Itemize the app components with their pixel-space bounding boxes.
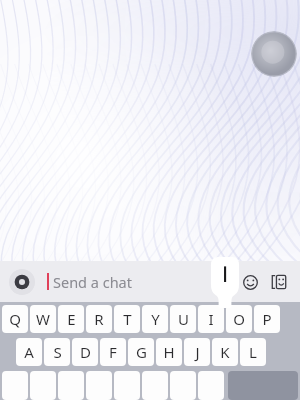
staticText: K <box>220 342 230 362</box>
button[interactable]: Key <box>114 371 140 400</box>
button[interactable]: T <box>114 305 140 333</box>
button[interactable]: O <box>226 305 252 333</box>
button[interactable]: G <box>128 338 154 366</box>
button[interactable]: Key <box>142 371 168 400</box>
button[interactable]: Camera <box>9 269 35 295</box>
staticText: L <box>249 342 257 362</box>
button[interactable]: Key <box>86 371 112 400</box>
staticText: P <box>262 309 272 329</box>
staticText: Y <box>151 309 160 329</box>
button[interactable]: P <box>254 305 280 333</box>
button[interactable]: Key <box>198 371 224 400</box>
button[interactable]: Key <box>170 371 196 400</box>
button[interactable]: D <box>72 338 98 366</box>
button[interactable]: K <box>212 338 238 366</box>
staticText: S <box>53 342 62 362</box>
staticText: I <box>208 309 214 329</box>
staticText: J <box>195 342 200 362</box>
staticText: U <box>178 309 189 329</box>
staticText: E <box>67 309 76 329</box>
button[interactable]: Q <box>2 305 28 333</box>
button[interactable]: H <box>156 338 182 366</box>
button[interactable]: W <box>30 305 56 333</box>
staticText: O <box>233 309 245 329</box>
button[interactable]: F <box>100 338 126 366</box>
button[interactable]: J <box>184 338 210 366</box>
button[interactable]: Key <box>30 371 56 400</box>
button[interactable]: Profile <box>251 31 297 77</box>
button[interactable]: Emoji <box>238 270 262 294</box>
button[interactable]: U <box>170 305 196 333</box>
button[interactable]: Send a chat <box>53 261 238 302</box>
button[interactable]: L <box>240 338 266 366</box>
staticText: F <box>109 342 117 362</box>
button[interactable]: Stickers <box>267 270 291 294</box>
staticText: G <box>136 342 147 362</box>
staticText: D <box>80 342 91 362</box>
button[interactable]: Y <box>142 305 168 333</box>
button[interactable]: S <box>44 338 70 366</box>
staticText: W <box>36 309 50 329</box>
staticText: Q <box>9 309 21 329</box>
button[interactable]: Key <box>2 371 28 400</box>
button[interactable]: A <box>16 338 42 366</box>
staticText: R <box>94 309 104 329</box>
button[interactable]: E <box>58 305 84 333</box>
staticText: H <box>163 342 175 362</box>
staticText: A <box>24 342 34 362</box>
button[interactable]: Key <box>58 371 84 400</box>
button[interactable]: I <box>198 305 224 333</box>
button[interactable]: R <box>86 305 112 333</box>
staticText: Send a chat <box>53 272 132 292</box>
staticText: T <box>123 309 132 329</box>
